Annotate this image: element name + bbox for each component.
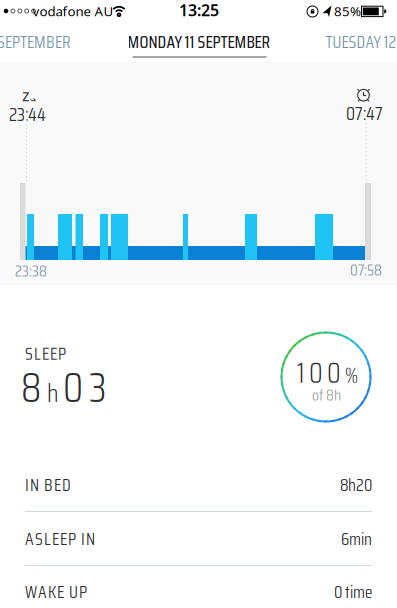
staticText: TUESDAY 12 <box>325 28 396 56</box>
button[interactable]: TUESDAY 12 <box>0 0 397 608</box>
button[interactable]: SEPTEMBER <box>0 0 397 608</box>
staticText: z <box>22 84 30 106</box>
staticText: 07:58 <box>350 257 382 283</box>
staticText: 13:25 <box>179 0 219 21</box>
staticText: I N B E D <box>25 471 71 499</box>
staticText: A S L E E P I N <box>25 525 95 553</box>
button[interactable]: MONDAY 11 SEPTEMBER <box>0 0 397 608</box>
staticText: S L E E P <box>25 340 66 367</box>
staticText: 23:38 <box>15 258 47 284</box>
staticText: SEPTEMBER <box>0 28 71 56</box>
staticText: 23:44 <box>9 100 46 129</box>
staticText: 1 0 0 % <box>297 351 358 394</box>
staticText: 85% <box>334 2 361 20</box>
staticText: 0 time <box>334 578 372 606</box>
staticText: W A K E U P <box>25 578 87 606</box>
staticText: 6min <box>341 525 372 553</box>
staticText: MONDAY 11 SEPTEMBER <box>127 28 270 56</box>
staticText: 8 h 0 3 <box>21 356 106 419</box>
staticText: 8h20 <box>340 471 372 499</box>
staticText: of 8h <box>312 382 341 408</box>
staticText: 07:47 <box>346 99 383 128</box>
staticText: vodafone AU <box>32 2 113 20</box>
